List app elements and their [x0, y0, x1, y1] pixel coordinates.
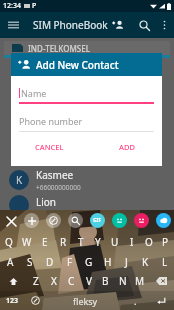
staticText: K — [142, 255, 149, 269]
button[interactable]: M — [131, 271, 148, 291]
button[interactable]: W — [18, 231, 36, 252]
staticText: A — [7, 255, 14, 269]
staticText: F — [67, 255, 73, 269]
button[interactable]: Q — [0, 231, 18, 252]
staticText: T — [78, 235, 84, 249]
button[interactable]: H — [98, 252, 117, 271]
button[interactable]: G — [79, 252, 98, 271]
staticText: 12:34 — [3, 1, 21, 11]
button[interactable]: Period — [124, 291, 147, 310]
button[interactable]: I — [123, 231, 140, 252]
button[interactable]: K — [136, 252, 155, 271]
button[interactable]: Search — [135, 16, 153, 34]
button[interactable]: Enter — [147, 291, 174, 310]
staticText: W — [22, 235, 32, 249]
button[interactable]: A — [0, 252, 20, 271]
staticText: Y — [95, 235, 101, 249]
staticText: +66000000000 — [36, 183, 81, 192]
staticText: X — [51, 274, 57, 288]
button[interactable]: F — [60, 252, 79, 271]
staticText: H — [104, 255, 112, 269]
button[interactable]: GIF — [90, 213, 105, 228]
button[interactable]: E — [36, 231, 54, 252]
staticText: Q — [5, 235, 13, 249]
button[interactable]: Search — [68, 213, 83, 228]
button[interactable]: 123 — [0, 291, 24, 310]
staticText: B — [102, 274, 109, 288]
staticText: Kasmee — [36, 168, 74, 182]
staticText: ADD — [119, 142, 135, 152]
button[interactable]: Add contact — [108, 15, 128, 35]
staticText: Add New Contact — [36, 58, 119, 72]
button[interactable]: Cloud — [156, 213, 171, 228]
button[interactable]: ADD — [115, 139, 139, 155]
staticText: 123 — [6, 296, 19, 306]
button[interactable]: K — [9, 165, 174, 195]
button[interactable]: Menu — [4, 16, 22, 34]
staticText: S — [27, 255, 33, 269]
button[interactable]: Space — [47, 291, 124, 310]
staticText: CANCEL — [35, 142, 64, 152]
button[interactable]: B — [97, 271, 114, 291]
button[interactable]: O — [140, 231, 157, 252]
button[interactable]: Add New Contact — [18, 53, 162, 76]
button[interactable]: Y — [89, 231, 106, 252]
button[interactable]: D — [40, 252, 60, 271]
button[interactable]: S — [20, 252, 40, 271]
staticText: J — [125, 255, 128, 269]
staticText: Name — [21, 87, 47, 99]
staticText: . — [134, 295, 137, 307]
staticText: U — [111, 235, 119, 249]
button[interactable]: CANCEL — [31, 139, 68, 155]
staticText: Z — [33, 274, 39, 288]
button[interactable]: Emoji — [112, 213, 127, 228]
button[interactable]: Close — [3, 213, 19, 229]
staticText: M — [135, 274, 145, 288]
staticText: Phone number — [19, 115, 83, 127]
button[interactable]: C — [63, 271, 80, 291]
staticText: Lion — [36, 195, 57, 206]
staticText: P — [162, 235, 169, 249]
button[interactable]: Backspace — [148, 271, 174, 291]
button[interactable]: IND-TELKOMSEL — [4, 41, 170, 55]
staticText: G — [85, 255, 93, 269]
staticText: R — [60, 235, 67, 249]
staticText: P — [32, 1, 37, 11]
staticText: N — [119, 274, 127, 288]
button[interactable]: Add — [24, 213, 39, 228]
staticText: fleksy — [73, 295, 98, 307]
button[interactable]: J — [117, 252, 136, 271]
button[interactable]: Stickers — [134, 213, 149, 228]
staticText: E — [42, 235, 48, 249]
staticText: C — [68, 274, 75, 288]
staticText: I — [130, 235, 134, 249]
staticText: IND-TELKOMSEL — [28, 43, 90, 54]
staticText: GIF — [93, 217, 102, 224]
button[interactable]: P — [157, 231, 174, 252]
button[interactable]: R — [54, 231, 72, 252]
button[interactable]: T — [72, 231, 89, 252]
button[interactable]: Shift — [0, 271, 27, 291]
staticText: L — [162, 255, 168, 269]
button[interactable]: X — [45, 271, 63, 291]
button[interactable]: N — [114, 271, 131, 291]
staticText: SIM PhoneBook — [33, 18, 108, 32]
staticText: K — [16, 173, 23, 187]
button[interactable]: More options — [158, 18, 171, 32]
staticText: O — [145, 235, 153, 249]
staticText: D — [46, 255, 54, 269]
button[interactable]: U — [106, 231, 123, 252]
button[interactable]: Z — [27, 271, 45, 291]
button[interactable]: Lion — [9, 195, 174, 206]
button[interactable]: Theme — [46, 213, 61, 228]
button[interactable]: V — [80, 271, 97, 291]
button[interactable]: Emoji — [24, 291, 47, 310]
staticText: V — [86, 274, 92, 288]
button[interactable]: L — [155, 252, 174, 271]
